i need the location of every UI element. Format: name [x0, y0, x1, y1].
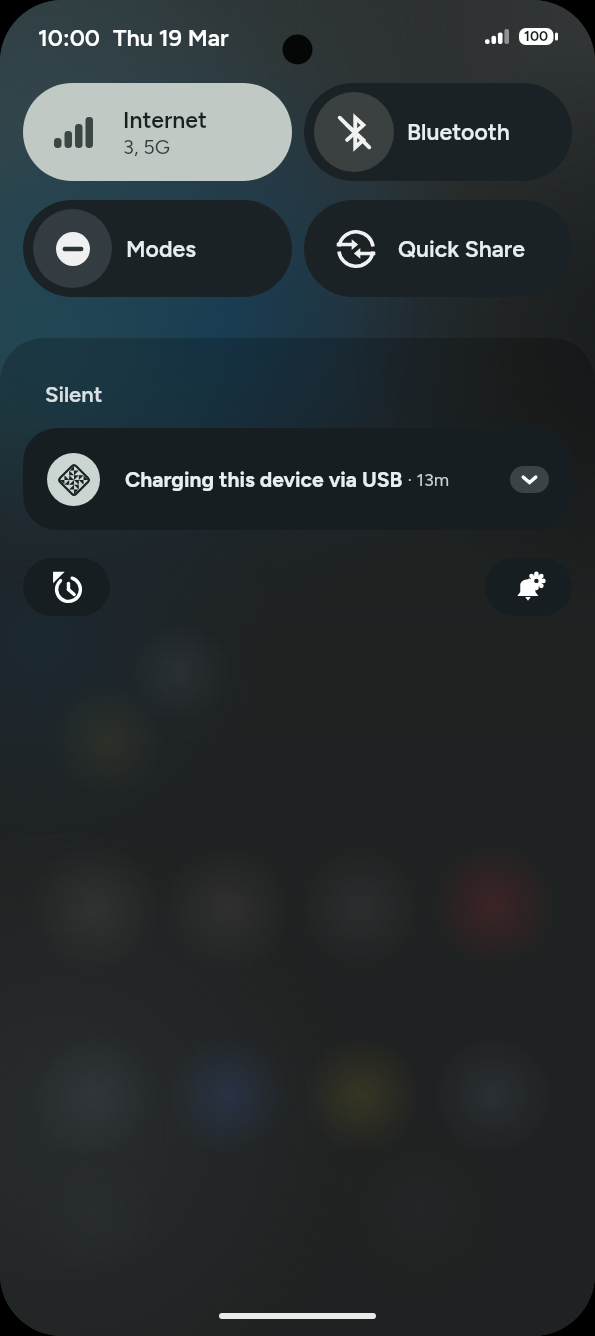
button[interactable]: Bluetooth	[304, 83, 572, 181]
button[interactable]: Modes	[23, 200, 292, 297]
button[interactable]: Notification settings	[485, 558, 572, 616]
staticText: Internet	[123, 106, 208, 134]
staticText: 3, 5G	[123, 135, 171, 159]
staticText: Quick Share	[398, 235, 525, 263]
staticText: Thu 19 Mar	[113, 24, 229, 52]
button[interactable]: Internet	[23, 83, 292, 181]
button[interactable]: Quick Share	[304, 200, 572, 297]
staticText: 100	[524, 28, 549, 45]
button[interactable]: History	[23, 558, 110, 616]
staticText: Charging this device via USB	[125, 467, 403, 492]
staticText: 10:00	[38, 24, 100, 52]
staticText: Bluetooth	[407, 118, 510, 146]
staticText: Modes	[126, 235, 196, 263]
button[interactable]: Expand notification	[510, 466, 549, 493]
staticText: · 13m	[403, 469, 450, 491]
button[interactable]: Charging this device via USB	[23, 428, 572, 530]
staticText: Silent	[45, 381, 103, 407]
